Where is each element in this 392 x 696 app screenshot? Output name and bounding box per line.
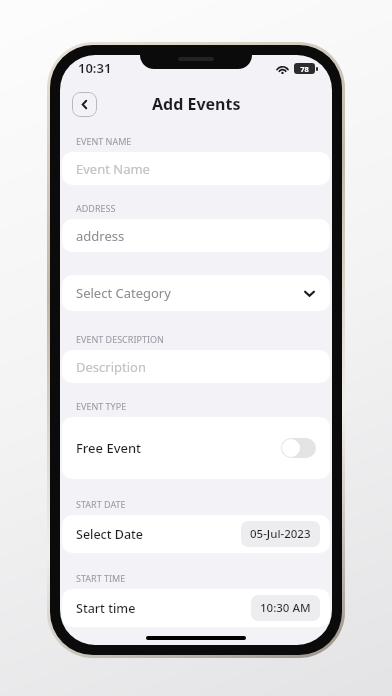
staticText: Free Event [76, 439, 142, 457]
button[interactable]: Select Date [62, 515, 330, 553]
staticText: Start time [76, 600, 136, 617]
staticText: Select Date [76, 526, 144, 543]
staticText: 05-Jul-2023 [250, 526, 311, 542]
staticText: 78 [300, 64, 309, 74]
staticText: 10:31 [78, 59, 112, 77]
button[interactable]: Back [72, 92, 97, 117]
staticText: START TIME [76, 572, 126, 584]
staticText: Add Events [152, 93, 241, 115]
button[interactable]: Free event toggle [281, 438, 316, 458]
button[interactable]: Description [62, 350, 330, 383]
staticText: ADDRESS [76, 202, 116, 214]
staticText: Description [76, 358, 146, 376]
staticText: EVENT TYPE [76, 400, 127, 412]
button[interactable]: Select Category [62, 275, 330, 311]
button[interactable]: Event Name [62, 152, 330, 185]
staticText: START DATE [76, 498, 126, 510]
button[interactable]: Start time [62, 589, 330, 627]
staticText: EVENT DESCRIPTION [76, 333, 164, 345]
staticText: Select Category [76, 284, 171, 302]
staticText: Event Name [76, 160, 150, 178]
staticText: 10:30 AM [260, 600, 311, 616]
button[interactable]: Free Event [62, 417, 330, 479]
staticText: EVENT NAME [76, 135, 132, 147]
button[interactable]: address [62, 219, 330, 252]
staticText: address [76, 227, 125, 245]
